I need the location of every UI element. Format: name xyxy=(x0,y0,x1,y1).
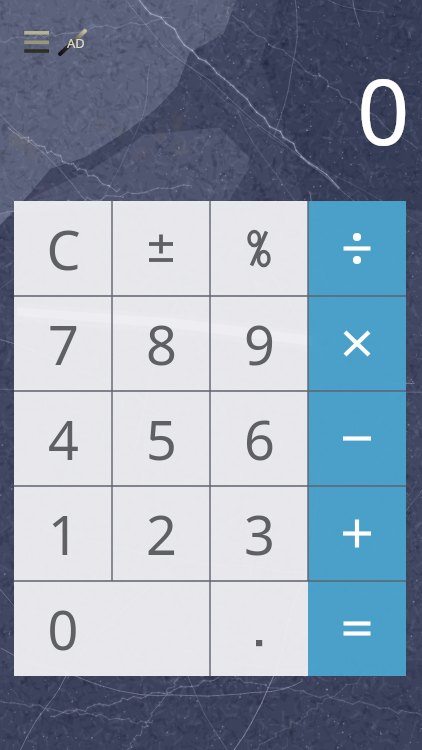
button[interactable]: Remove ads xyxy=(56,24,94,60)
button[interactable]: 3 xyxy=(210,486,308,581)
button[interactable]: Percent xyxy=(210,201,308,296)
staticText: 4 xyxy=(48,402,79,476)
button[interactable]: Multiply xyxy=(308,296,406,391)
button[interactable]: 8 xyxy=(112,296,210,391)
button[interactable]: 1 xyxy=(14,486,112,581)
button[interactable]: 2 xyxy=(112,486,210,581)
button[interactable]: 5 xyxy=(112,391,210,486)
staticText: 3 xyxy=(244,497,275,571)
button[interactable]: Equals xyxy=(308,581,406,676)
button[interactable]: Subtract xyxy=(308,391,406,486)
staticText: 6 xyxy=(244,402,275,476)
staticText: 5 xyxy=(146,402,177,476)
staticText: 2 xyxy=(146,497,177,571)
staticText: AD xyxy=(67,34,85,52)
button[interactable]: 4 xyxy=(14,391,112,486)
staticText: 1 xyxy=(48,497,79,571)
staticText: 0 xyxy=(14,592,112,666)
button[interactable]: Decimal point xyxy=(210,581,308,676)
staticText: 0 xyxy=(357,47,410,172)
staticText: 9 xyxy=(244,307,275,381)
button[interactable]: Divide xyxy=(308,201,406,296)
button[interactable]: 6 xyxy=(210,391,308,486)
button[interactable]: Menu xyxy=(18,22,56,62)
staticText: C xyxy=(46,212,81,286)
button[interactable]: C xyxy=(14,201,112,296)
button[interactable]: 0 xyxy=(14,581,210,676)
button[interactable]: Plus minus xyxy=(112,201,210,296)
staticText: 7 xyxy=(48,307,79,381)
button[interactable]: Add xyxy=(308,486,406,581)
staticText: 8 xyxy=(146,307,177,381)
button[interactable]: 9 xyxy=(210,296,308,391)
button[interactable]: 7 xyxy=(14,296,112,391)
